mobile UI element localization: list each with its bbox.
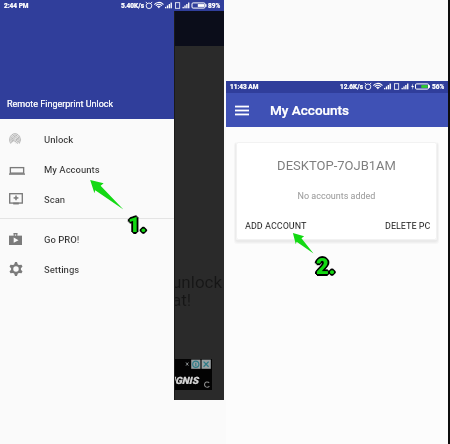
button[interactable]: Settings <box>0 254 174 284</box>
staticText: 5.40K/s <box>121 2 144 10</box>
staticText: 1. <box>128 213 147 238</box>
staticText: at! <box>172 290 192 310</box>
staticText: 2. <box>315 255 335 281</box>
button[interactable]: Scan <box>0 184 174 214</box>
staticText: 1. <box>129 214 148 239</box>
button[interactable]: ADD ACCOUNT <box>245 221 307 232</box>
staticText: 2. <box>317 255 337 281</box>
staticText: 1. <box>128 211 147 236</box>
staticText: 2. <box>318 254 338 280</box>
staticText: DESKTOP-7OJB1AM <box>236 158 437 173</box>
staticText: 12.6K/s <box>340 83 363 91</box>
staticText: 2:44 PM <box>4 2 29 10</box>
staticText: 2. <box>315 254 335 280</box>
staticText: ADD ACCOUNT <box>245 221 307 232</box>
staticText: 11:43 AM <box>230 83 259 91</box>
staticText: 1. <box>128 215 147 240</box>
staticText: 2. <box>316 256 336 282</box>
staticText: Remote Fingerprint Unlock <box>7 99 114 110</box>
staticText: My Accounts <box>44 164 100 175</box>
staticText: 2. <box>316 254 336 280</box>
staticText: 2. <box>316 255 336 281</box>
staticText: 2. <box>314 254 334 280</box>
staticText: Scan <box>44 194 66 205</box>
staticText: 2. <box>316 253 336 279</box>
staticText: 2. <box>315 253 335 279</box>
staticText: 1. <box>127 213 146 238</box>
staticText: 1. <box>129 212 148 237</box>
staticText: My Accounts <box>270 102 350 118</box>
staticText: Unlock <box>44 134 74 145</box>
staticText: 2. <box>316 252 336 278</box>
staticText: 1. <box>129 213 148 238</box>
staticText: 89% <box>208 2 221 10</box>
staticText: 1. <box>130 213 149 238</box>
button[interactable]: My Accounts <box>0 154 174 184</box>
staticText: Settings <box>44 264 80 275</box>
staticText: 1. <box>128 212 147 237</box>
staticText: 2. <box>317 253 337 279</box>
staticText: 1. <box>127 214 146 239</box>
staticText: Go PRO! <box>44 234 80 245</box>
staticText: IGNIS <box>172 375 199 387</box>
staticText: DELETE PC <box>385 221 431 232</box>
staticText: unlock <box>172 272 223 292</box>
staticText: 56% <box>432 83 445 91</box>
button[interactable]: Unlock <box>0 124 174 154</box>
button[interactable]: DELETE PC <box>385 221 431 232</box>
staticText: No accounts added <box>236 191 437 202</box>
staticText: 2. <box>317 254 337 280</box>
button[interactable]: Open navigation drawer <box>226 93 258 127</box>
staticText: 1. <box>127 212 146 237</box>
button[interactable]: Go PRO! <box>0 224 174 254</box>
staticText: 1. <box>128 214 147 239</box>
staticText: 1. <box>126 213 145 238</box>
